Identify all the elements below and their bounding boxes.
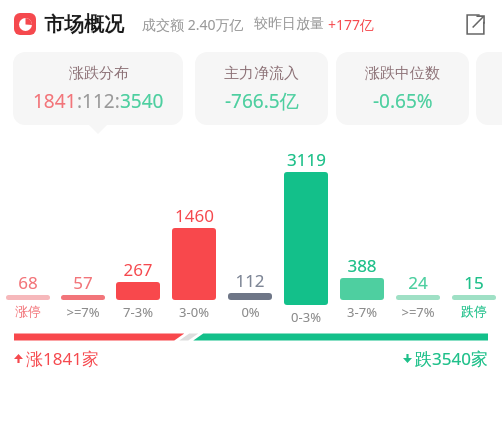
staticText: >=7% — [66, 303, 100, 321]
staticText: 3-7% — [347, 303, 377, 321]
staticText: 涨1841家 — [26, 347, 99, 370]
staticText: 1841 — [33, 88, 77, 114]
staticText: 较昨日放量 — [254, 15, 324, 33]
staticText: 68 — [18, 271, 38, 294]
staticText: 388 — [347, 254, 377, 277]
button[interactable]: 涨跌分布 — [13, 52, 183, 125]
staticText: -0.65% — [373, 88, 433, 114]
staticText: 涨跌中位数 — [365, 64, 440, 83]
staticText: 跌停 — [461, 303, 487, 319]
staticText: +177亿 — [328, 15, 375, 34]
staticText: 3-0% — [179, 303, 209, 321]
staticText: 7-3% — [123, 303, 153, 321]
staticText: 24 — [408, 271, 428, 294]
staticText: :112: — [77, 88, 120, 114]
staticText: 涨停 — [15, 303, 41, 319]
staticText: 267 — [123, 258, 153, 281]
staticText: 112 — [235, 269, 265, 292]
staticText: 15 — [464, 271, 484, 294]
button[interactable]: 跌3540家 — [403, 347, 488, 370]
button[interactable]: Open in new window — [460, 9, 490, 39]
staticText: 市场概况 — [44, 12, 124, 37]
button[interactable]: 涨1841家 — [14, 347, 99, 370]
staticText: 跌3540家 — [415, 347, 488, 370]
staticText: >=7% — [401, 303, 435, 321]
staticText: 0-3% — [291, 308, 321, 323]
button[interactable]: 涨跌中位数 — [336, 52, 469, 125]
staticText: 3119 — [287, 148, 326, 171]
staticText: 0% — [241, 303, 260, 321]
staticText: 3540 — [120, 88, 164, 114]
staticText: 涨跌分布 — [69, 64, 129, 83]
staticText: 主力净流入 — [224, 64, 299, 83]
staticText: -766.5亿 — [225, 88, 299, 114]
staticText: 成交额 2.40万亿 — [142, 15, 244, 34]
staticText: 57 — [73, 271, 93, 294]
button[interactable]: 主力净流入 — [195, 52, 328, 125]
staticText: 1460 — [175, 204, 214, 227]
